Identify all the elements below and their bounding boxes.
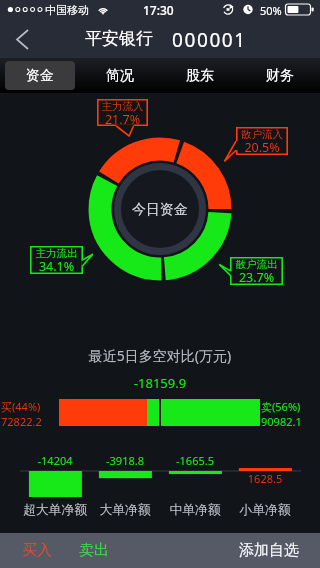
staticText: 90982.1 (261, 414, 302, 426)
button[interactable]: 财务 (240, 58, 320, 93)
staticText: -18159.9 (0, 374, 320, 392)
staticText: 主力流出 (30, 247, 83, 260)
staticText: 50% (260, 3, 282, 18)
staticText: 今日资金 (120, 201, 200, 219)
button[interactable]: 添加自选 (226, 533, 312, 568)
staticText: 17:30 (143, 2, 174, 18)
staticText: 中国移动 (45, 3, 89, 17)
staticText: 超大单净额 (20, 502, 90, 518)
staticText: 添加自选 (239, 541, 299, 560)
staticText: 34.1% (30, 258, 83, 275)
staticText: 20.5% (236, 139, 288, 156)
staticText: 资金 (26, 67, 54, 85)
staticText: 1628.5 (230, 471, 300, 486)
button[interactable]: Back (0, 20, 44, 58)
staticText: 主力流入 (97, 100, 148, 113)
button[interactable]: 卖出 (65, 533, 123, 568)
staticText: 平安银行 (85, 28, 153, 49)
staticText: 大单净额 (90, 502, 160, 518)
staticText: 简况 (106, 67, 134, 85)
staticText: 小单净额 (230, 502, 300, 518)
button[interactable]: 买入 (8, 533, 66, 568)
staticText: 000001 (172, 27, 247, 53)
staticText: 买(44%) (1, 399, 41, 414)
button[interactable]: 资金 (0, 58, 80, 93)
staticText: 散户流入 (236, 128, 288, 141)
staticText: 72822.2 (1, 414, 42, 426)
staticText: 买入 (22, 541, 52, 560)
staticText: 卖(56%) (261, 399, 301, 414)
staticText: -3918.8 (90, 453, 160, 468)
button[interactable]: 简况 (80, 58, 160, 93)
staticText: 中单净额 (160, 502, 230, 518)
staticText: 23.7% (230, 269, 283, 286)
button[interactable]: 股东 (160, 58, 240, 93)
staticText: 21.7% (97, 111, 148, 128)
staticText: 散户流出 (230, 258, 283, 271)
staticText: -14204 (20, 453, 90, 468)
staticText: 财务 (266, 67, 294, 85)
staticText: 卖出 (79, 541, 109, 560)
staticText: 最近5日多空对比(万元) (0, 346, 320, 365)
staticText: -1665.5 (160, 453, 230, 468)
staticText: 股东 (186, 67, 214, 85)
